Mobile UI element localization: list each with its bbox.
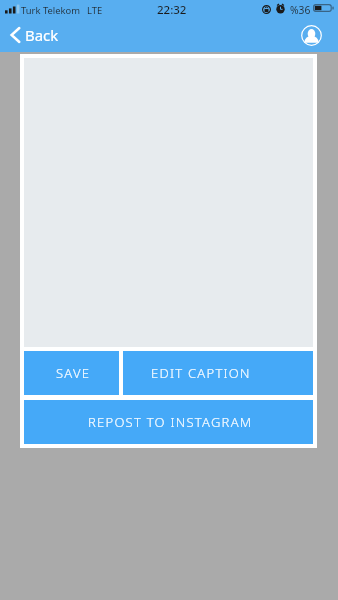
- staticText: %36: [290, 3, 311, 17]
- staticText: LTE: [87, 4, 103, 17]
- staticText: Back: [25, 25, 59, 45]
- staticText: SAVE: [56, 364, 91, 382]
- staticText: 22:32: [157, 2, 187, 18]
- button[interactable]: Profile: [301, 25, 322, 46]
- staticText: REPOST TO INSTAGRAM: [88, 413, 253, 431]
- button[interactable]: EDIT CAPTION: [123, 351, 313, 395]
- button[interactable]: REPOST TO INSTAGRAM: [24, 400, 313, 444]
- button[interactable]: SAVE: [24, 351, 119, 395]
- staticText: EDIT CAPTION: [151, 364, 251, 382]
- staticText: Turk Telekom: [21, 4, 80, 17]
- button[interactable]: Back: [0, 18, 62, 52]
